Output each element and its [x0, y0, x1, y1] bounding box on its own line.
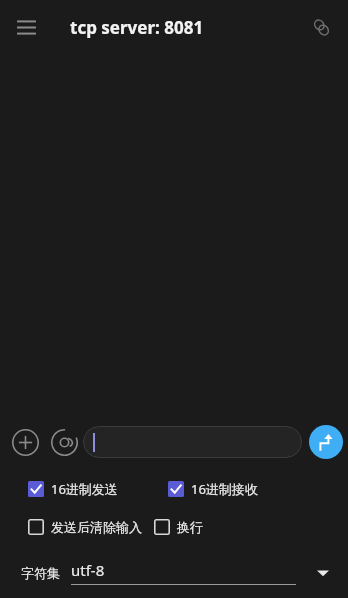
button[interactable]: 16进制接收: [168, 478, 258, 500]
staticText: tcp server: 8081: [70, 16, 204, 39]
button[interactable]: At: [45, 423, 83, 461]
staticText: utf-8: [71, 560, 105, 580]
button[interactable]: utf-8: [71, 558, 296, 588]
button[interactable]: Message input: [83, 426, 302, 458]
button[interactable]: Link: [300, 6, 342, 48]
staticText: 字符集: [21, 565, 60, 581]
button[interactable]: 发送后清除输入: [28, 517, 142, 537]
button[interactable]: Menu: [4, 5, 48, 49]
button[interactable]: Select charset: [310, 560, 336, 586]
staticText: 发送后清除输入: [51, 519, 142, 535]
button[interactable]: 16进制发送: [28, 478, 118, 500]
button[interactable]: Send: [309, 425, 343, 459]
staticText: 16进制发送: [51, 480, 118, 498]
staticText: 换行: [177, 519, 203, 535]
button[interactable]: 换行: [154, 517, 203, 537]
staticText: 16进制接收: [191, 480, 258, 498]
button[interactable]: Add: [5, 422, 45, 462]
